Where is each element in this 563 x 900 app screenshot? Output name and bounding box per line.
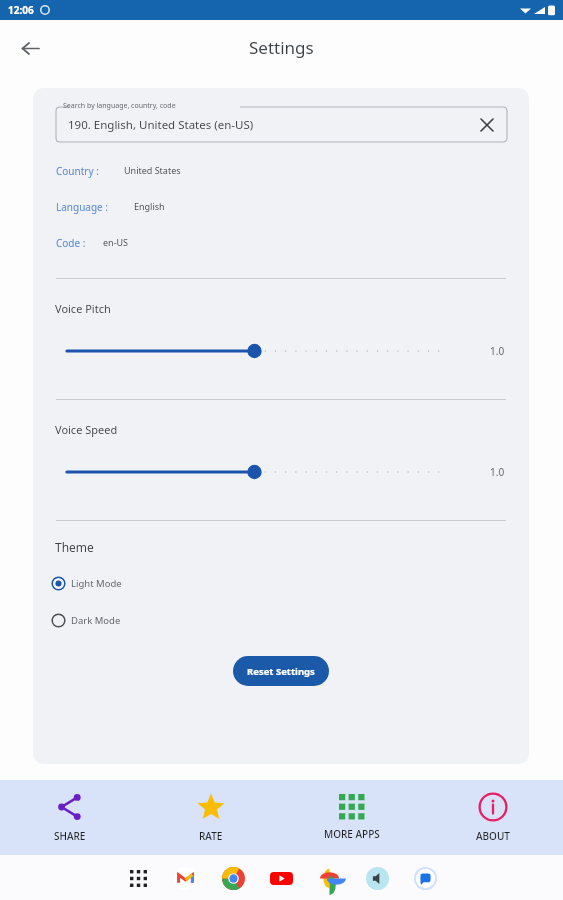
staticText: 190. English, United States (en-US) [68, 117, 254, 133]
button[interactable]: Photos [316, 865, 342, 891]
button[interactable]: Reset Settings [233, 656, 329, 686]
button[interactable]: Light Mode [51, 573, 529, 593]
staticText: Voice Speed [55, 422, 118, 437]
button[interactable]: All apps [126, 866, 150, 890]
staticText: Dark Mode [71, 614, 121, 627]
staticText: Voice Pitch [55, 301, 111, 316]
staticText: en-US [103, 236, 129, 248]
button[interactable]: Gmail [172, 865, 198, 891]
button[interactable]: YouTube [268, 865, 294, 891]
staticText: Country : [56, 164, 99, 178]
staticText: Code : [56, 236, 86, 250]
staticText: United States [124, 164, 181, 176]
staticText: English [134, 200, 165, 212]
button[interactable]: Chrome [220, 865, 246, 891]
staticText: MORE APPS [324, 827, 380, 841]
button[interactable]: Messages [412, 865, 438, 891]
staticText: Language : [56, 200, 109, 214]
staticText: RATE [199, 829, 223, 843]
button[interactable]: SHARE [0, 780, 140, 855]
button[interactable]: Back [10, 28, 50, 68]
staticText: Theme [55, 539, 94, 555]
button[interactable] [67, 462, 507, 482]
staticText: Search by language, country, code [63, 101, 176, 111]
button[interactable]: ABOUT [422, 780, 563, 855]
staticText: 1.0 [490, 465, 505, 479]
staticText: Settings [249, 36, 314, 59]
button[interactable]: Dark Mode [51, 610, 529, 630]
button[interactable] [67, 341, 507, 361]
staticText: 1.0 [490, 344, 505, 358]
staticText: 12:06 [8, 3, 34, 17]
staticText: Light Mode [71, 577, 122, 590]
staticText: Reset Settings [247, 665, 315, 678]
button[interactable]: MORE APPS [281, 780, 422, 855]
staticText: SHARE [54, 829, 86, 843]
button[interactable]: RATE [140, 780, 281, 855]
button[interactable]: Clear [475, 113, 499, 137]
staticText: ABOUT [476, 829, 510, 843]
button[interactable]: Sound [364, 865, 390, 891]
